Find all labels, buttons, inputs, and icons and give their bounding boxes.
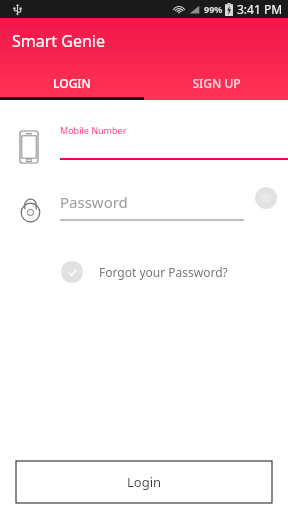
button[interactable]: Login (16, 461, 272, 503)
staticText: Forgot your Password? (99, 264, 228, 280)
button[interactable]: Mobile number (0, 114, 288, 172)
staticText: Password (60, 192, 128, 212)
staticText: Login (127, 473, 162, 491)
staticText: 3:41 PM (237, 1, 283, 17)
other: Password (21, 192, 40, 223)
button[interactable]: Password (0, 184, 288, 236)
button[interactable]: Forgot your Password? (61, 256, 228, 288)
staticText: 99% (204, 3, 223, 15)
button[interactable]: LOGIN (0, 66, 144, 100)
button[interactable]: SIGN UP (144, 66, 288, 100)
staticText: LOGIN (53, 75, 91, 91)
other: Mobile number (20, 131, 38, 163)
staticText: Mobile Number (60, 124, 127, 136)
staticText: Smart Genie (12, 30, 105, 52)
staticText: SIGN UP (192, 75, 241, 91)
button[interactable]: Show password (255, 187, 277, 209)
